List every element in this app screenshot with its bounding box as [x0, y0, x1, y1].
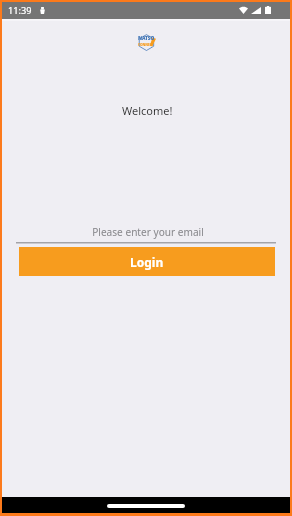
button[interactable]: Login [19, 247, 275, 276]
button[interactable]: Home [107, 504, 185, 508]
button[interactable]: Please enter your email [19, 223, 276, 240]
staticText: 11:39 [8, 4, 32, 17]
staticText: NATSO [138, 35, 155, 42]
staticText: Login [130, 254, 164, 270]
staticText: Welcome! [122, 103, 173, 118]
staticText: Please enter your email [92, 225, 204, 239]
staticText: CONNECT [138, 42, 154, 46]
